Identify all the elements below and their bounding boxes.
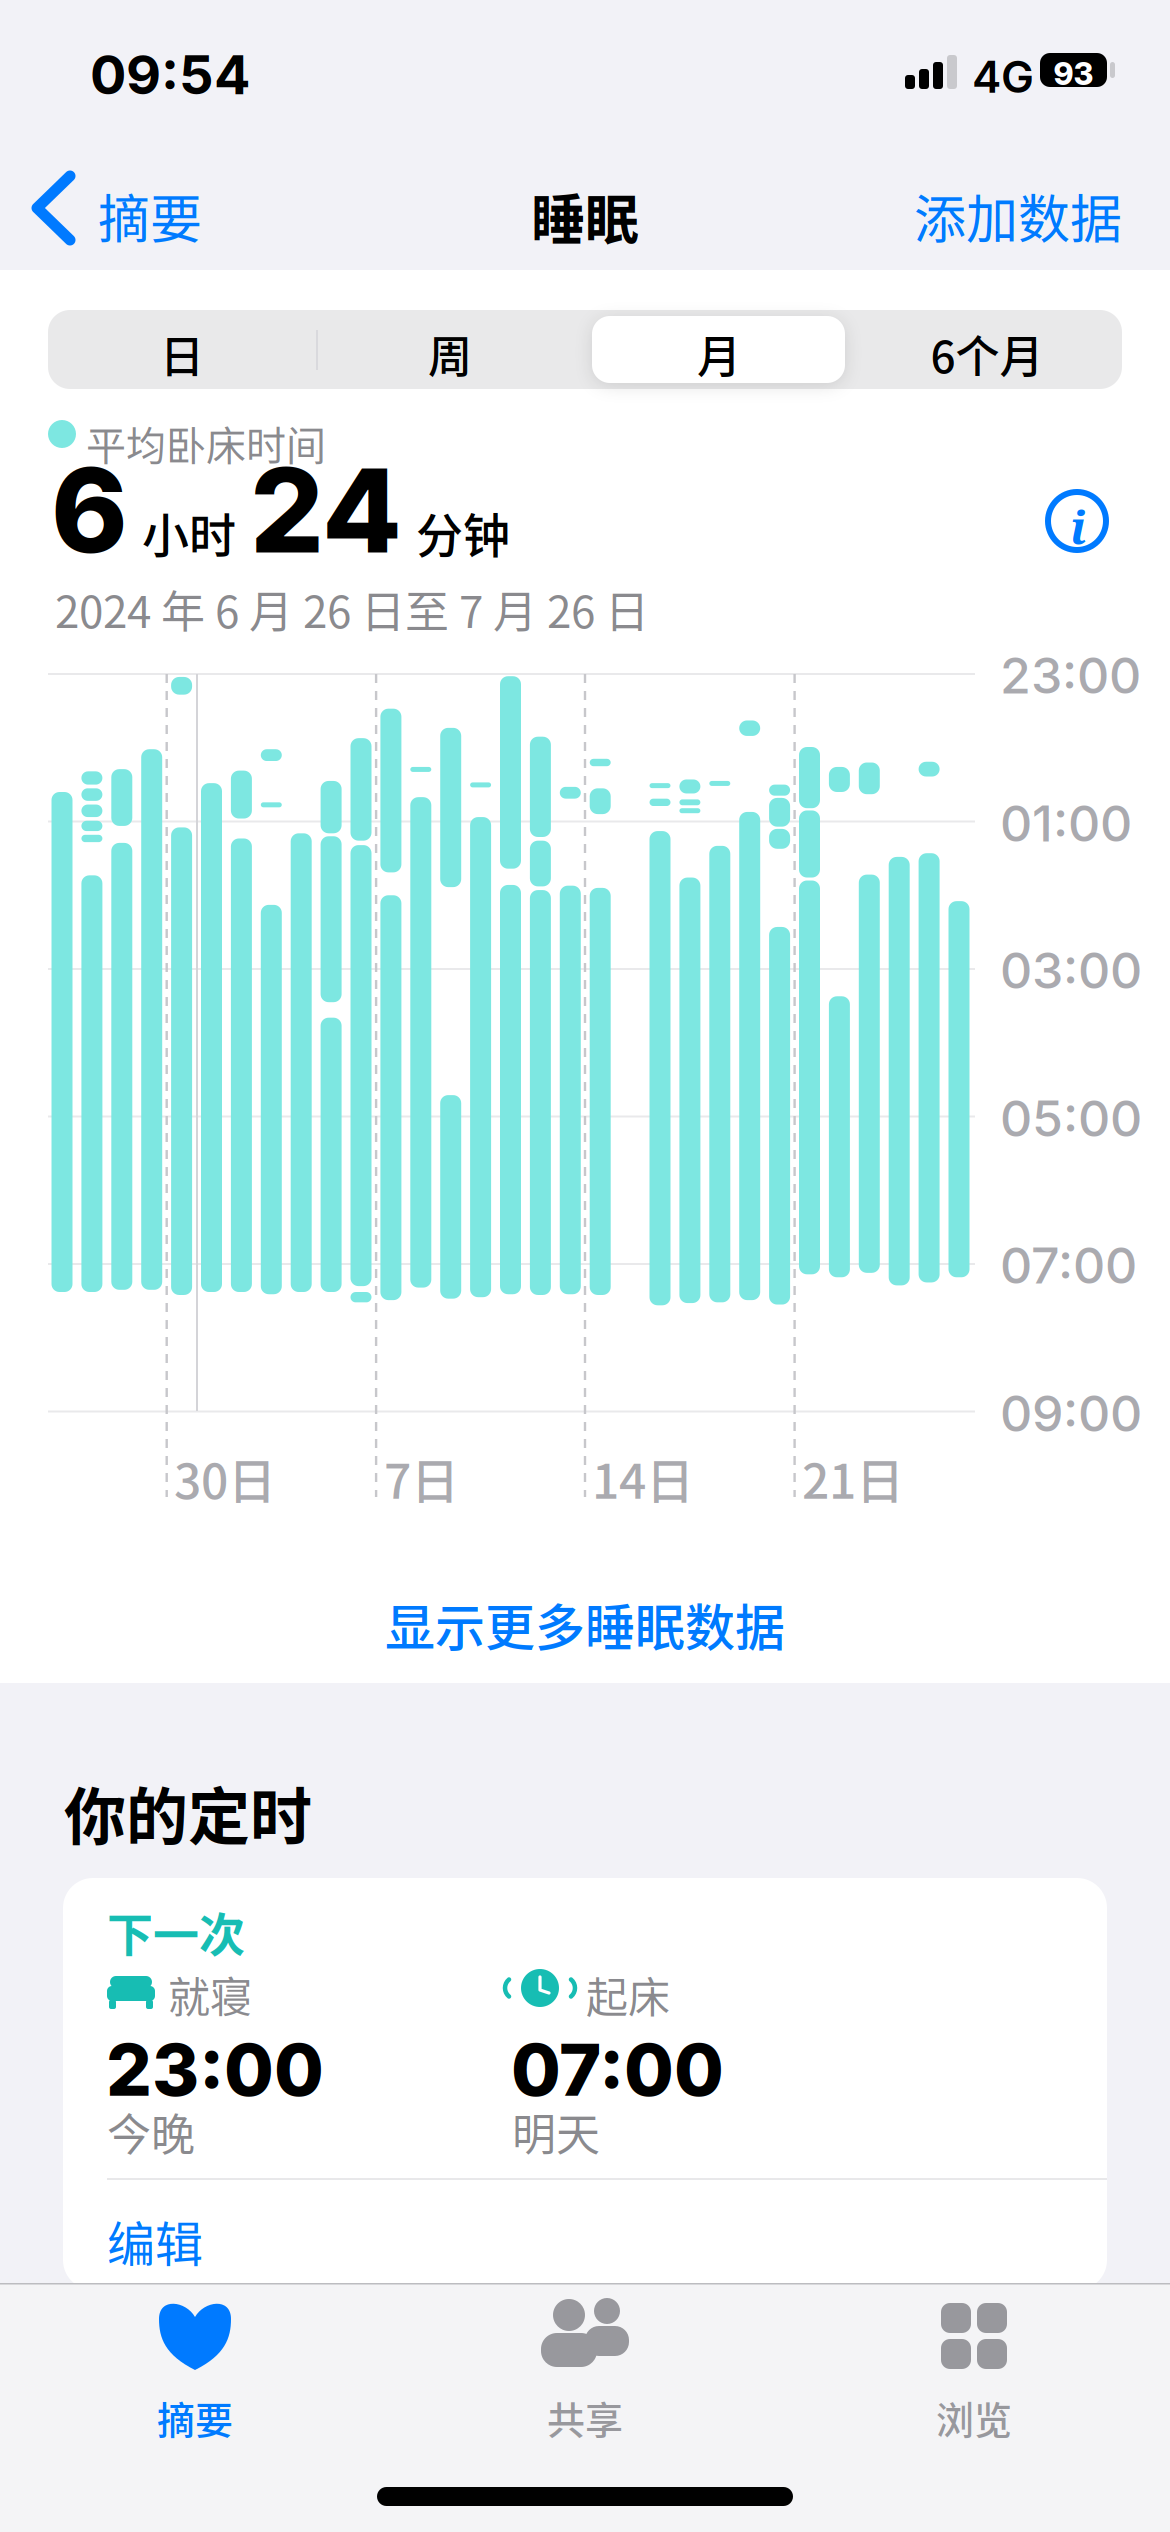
staticText: 添加数据 [914,178,1122,253]
staticText: 显示更多睡眠数据 [385,1588,785,1660]
staticText: 4G [972,50,1034,103]
staticText: 09:54 [90,42,251,107]
staticText: 今晚 [107,2100,195,2164]
staticText: 14日 [592,1443,694,1512]
staticText: 摘要 [98,178,202,253]
staticText: 明天 [512,2100,600,2164]
staticText: 07:00 [511,2026,724,2113]
staticText: 平均卧床时间 [86,414,326,472]
staticText: 你的定时 [64,1768,312,1858]
staticText: 09:00 [1000,1383,1142,1443]
staticText: 起床 [586,1964,670,2025]
staticText: 93 [1053,55,1093,92]
staticText: 23:00 [1000,645,1141,705]
staticText: 分钟 [416,498,510,566]
staticText: 摘要 [157,2390,233,2445]
staticText: 01:00 [1000,793,1132,853]
staticText: 小时 [142,498,236,566]
staticText: 7日 [384,1443,459,1512]
staticText: 浏览 [936,2390,1012,2445]
staticText: 23:00 [106,2026,324,2113]
staticText: 24 [250,440,402,580]
staticText: 编辑 [107,2206,203,2275]
staticText: 05:00 [1000,1088,1142,1148]
staticText: 2024 年 6 月 26 日至 7 月 26 日 [55,577,649,641]
staticText: 日 [160,322,204,386]
staticText: 月 [697,322,741,386]
staticText: 07:00 [1000,1235,1137,1295]
staticText: 下一次 [107,1898,245,1965]
staticText: 30日 [174,1443,276,1512]
staticText: 6个月 [930,322,1043,386]
staticText: 21日 [802,1443,904,1512]
staticText: 周 [428,322,472,386]
staticText: 就寝 [168,1964,252,2025]
staticText: i [1070,496,1086,558]
staticText: 6 [51,440,128,580]
staticText: 共享 [547,2390,623,2445]
staticText: 03:00 [1000,940,1142,1000]
staticText: 睡眠 [531,177,639,255]
